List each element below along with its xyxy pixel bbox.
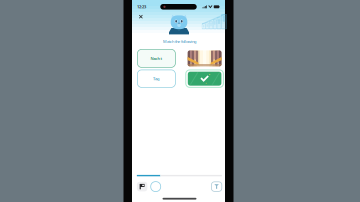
- button[interactable]: Hint: [211, 182, 222, 192]
- button[interactable]: Nacht: [137, 49, 175, 67]
- button[interactable]: Listen: [150, 182, 161, 192]
- button[interactable]: Profile: [137, 182, 148, 192]
- staticText: 12:23: [137, 4, 146, 9]
- button[interactable]: City street at sunset: [186, 49, 223, 67]
- staticText: Match the following: [163, 39, 196, 44]
- button[interactable]: Close: [136, 12, 146, 22]
- staticText: Nacht: [150, 56, 162, 61]
- button[interactable]: Matched correctly: [186, 70, 223, 87]
- button[interactable]: Tag: [137, 70, 175, 87]
- staticText: Tag: [153, 76, 160, 81]
